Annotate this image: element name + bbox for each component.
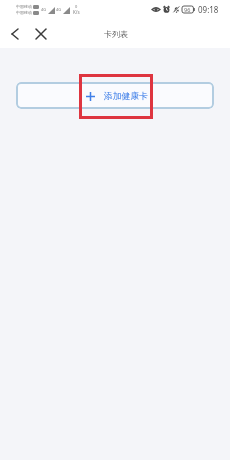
staticText: 4G	[41, 7, 47, 12]
staticText: 中国移动	[16, 4, 32, 9]
staticText: 96	[184, 6, 191, 13]
staticText: 卡列表	[104, 29, 128, 39]
staticText: 中国移动	[16, 10, 32, 15]
staticText: 09:18	[198, 4, 219, 15]
button[interactable]: Back	[5, 24, 25, 44]
staticText: K/s	[73, 9, 80, 15]
staticText: 4G	[56, 7, 62, 12]
button[interactable]: Close	[31, 24, 51, 44]
staticText: 添加健康卡	[104, 91, 148, 102]
button[interactable]: 添加健康卡	[16, 82, 214, 109]
staticText: 0	[75, 4, 78, 9]
